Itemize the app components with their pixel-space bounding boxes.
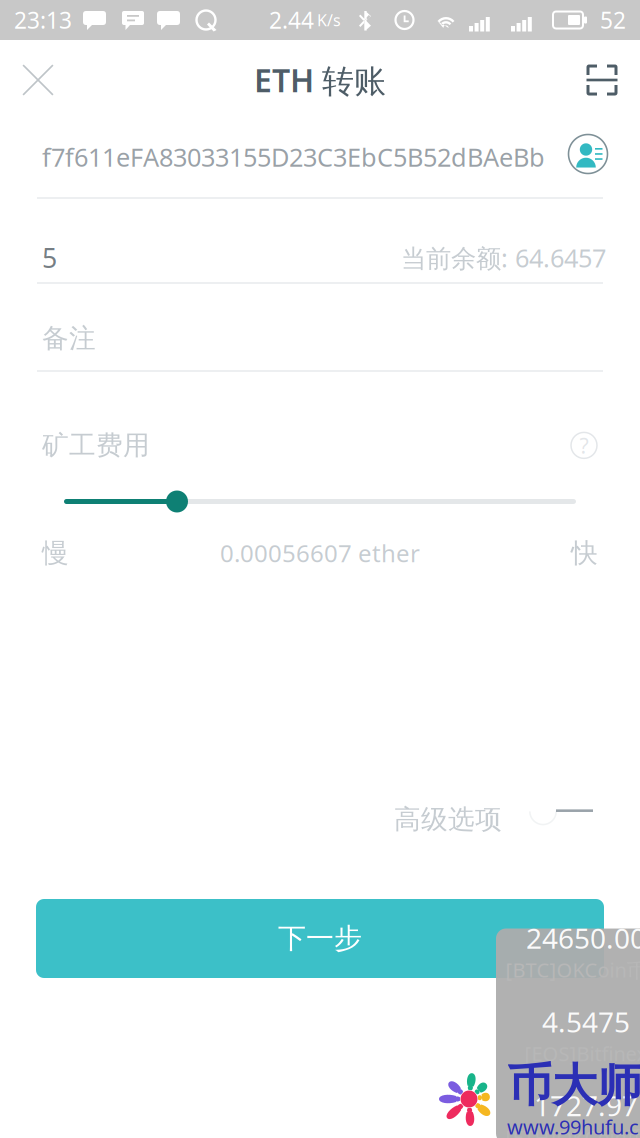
staticText: ? [579, 431, 588, 459]
button[interactable]: Fee help [570, 431, 598, 459]
button[interactable]: 下一步 [36, 899, 604, 978]
staticText: [ETH]OKCoin币行 [505, 1124, 640, 1138]
staticText: 下一步 [278, 921, 362, 956]
staticText: 币大师 [507, 1058, 640, 1114]
staticText: 高级选项 [394, 803, 502, 836]
staticText: K/s [317, 9, 341, 31]
staticText: www.99hufu.com [507, 1114, 640, 1138]
staticText: [BTC]OKCoin币行 [505, 956, 640, 983]
staticText: 4.5475 [542, 1003, 630, 1040]
staticText: 0.00056607 ether [220, 537, 420, 569]
staticText: ETH 转账 [254, 59, 386, 101]
staticText: 快 [571, 537, 598, 569]
staticText: 24650.00 [526, 919, 640, 956]
staticText: 当前余额: 64.6457 [401, 241, 606, 274]
button[interactable]: 高级选项 [394, 787, 594, 852]
staticText: 矿工费用 [42, 429, 150, 462]
staticText: 慢 [42, 537, 69, 569]
button[interactable]: Close [0, 40, 76, 120]
staticText: f7f611eFA83033155D23C3EbC5B52dBAeBb [42, 140, 545, 174]
button[interactable]: Scan QR code [564, 40, 640, 120]
staticText: 5 [42, 240, 57, 275]
staticText: 1727.97 [534, 1087, 638, 1124]
staticText: 备注 [42, 322, 96, 355]
staticText: 52 [600, 5, 626, 35]
button[interactable]: Choose contact [566, 132, 610, 176]
staticText: [EOS]Bitfinex [524, 1040, 640, 1067]
staticText: 23:13 [14, 5, 72, 35]
staticText: 2.44 [269, 5, 314, 35]
